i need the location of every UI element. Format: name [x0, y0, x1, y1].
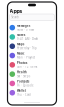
staticText: Mon · Playlist [17, 56, 35, 59]
button[interactable]: Health [7, 69, 56, 79]
staticText: Messages [17, 24, 30, 27]
staticText: Music [17, 52, 24, 55]
button[interactable]: Messages [7, 23, 56, 32]
staticText: Photos [17, 61, 27, 65]
staticText: Sun · 12 items [17, 65, 37, 69]
staticText: Wallet [17, 89, 26, 92]
button[interactable]: Notes [7, 32, 56, 42]
button[interactable]: Music [7, 51, 56, 60]
staticText: 9:41 AM · Draft [17, 37, 38, 41]
staticText: Maps [17, 42, 24, 46]
staticText: Apps [9, 7, 22, 15]
staticText: Search [11, 15, 19, 19]
button[interactable]: Wallet [7, 88, 56, 97]
staticText: Health [17, 70, 27, 74]
staticText: Thu · Card [17, 93, 31, 96]
button[interactable]: Photos [7, 60, 56, 69]
staticText: Podcasts [17, 80, 29, 83]
staticText: Yesterday · Trip [17, 46, 37, 50]
staticText: Fri · Episode [17, 84, 34, 87]
button[interactable]: Maps [7, 42, 56, 51]
button[interactable]: Podcasts [7, 79, 56, 88]
staticText: Sat · Steps [17, 74, 30, 78]
staticText: Notes [17, 33, 25, 37]
staticText: Now · 3 new [17, 28, 34, 31]
